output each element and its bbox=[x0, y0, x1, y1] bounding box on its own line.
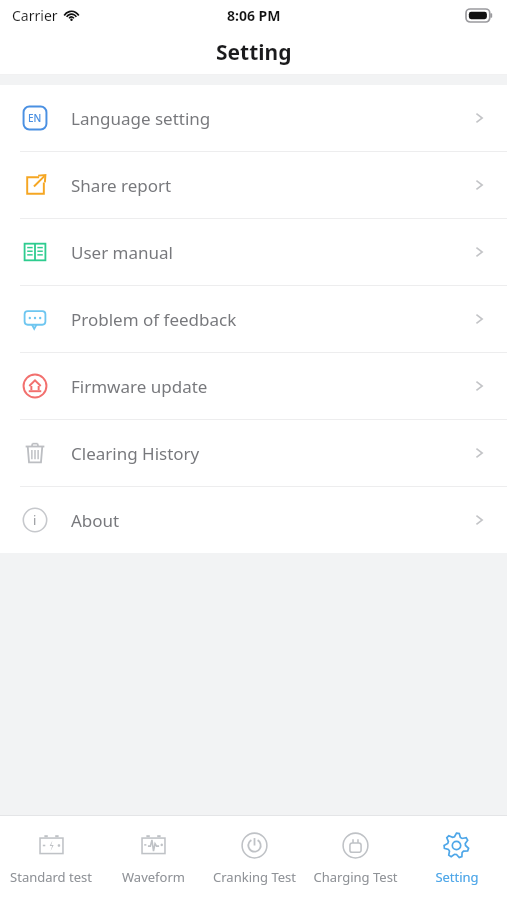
button[interactable]: i bbox=[0, 487, 507, 553]
staticText: Setting bbox=[216, 38, 292, 67]
staticText: Standard test bbox=[10, 868, 92, 886]
staticText: Firmware update bbox=[71, 375, 208, 398]
staticText: EN bbox=[28, 111, 42, 125]
staticText: i bbox=[33, 511, 37, 529]
staticText: Clearing History bbox=[71, 442, 200, 465]
button[interactable]: User manual bbox=[0, 219, 507, 285]
button[interactable]: Charging Test bbox=[305, 816, 406, 900]
button[interactable]: Waveform bbox=[102, 816, 204, 900]
staticText: About bbox=[71, 509, 120, 532]
staticText: Language setting bbox=[71, 107, 211, 130]
button[interactable]: Problem of feedback bbox=[0, 286, 507, 352]
button[interactable]: Firmware update bbox=[0, 353, 507, 419]
staticText: Setting bbox=[435, 868, 479, 886]
staticText: User manual bbox=[71, 241, 173, 264]
staticText: Waveform bbox=[122, 868, 185, 886]
staticText: Carrier bbox=[12, 6, 58, 25]
button[interactable]: Cranking Test bbox=[204, 816, 305, 900]
staticText: Problem of feedback bbox=[71, 308, 237, 331]
button[interactable]: Standard test bbox=[0, 816, 102, 900]
staticText: Share report bbox=[71, 174, 172, 197]
button[interactable]: Share report bbox=[0, 152, 507, 218]
button[interactable]: Setting bbox=[406, 816, 507, 900]
staticText: 8:06 PM bbox=[227, 6, 281, 25]
button[interactable]: Clearing History bbox=[0, 420, 507, 486]
staticText: Charging Test bbox=[313, 868, 398, 886]
button[interactable]: EN bbox=[0, 85, 507, 151]
staticText: Cranking Test bbox=[213, 868, 296, 886]
